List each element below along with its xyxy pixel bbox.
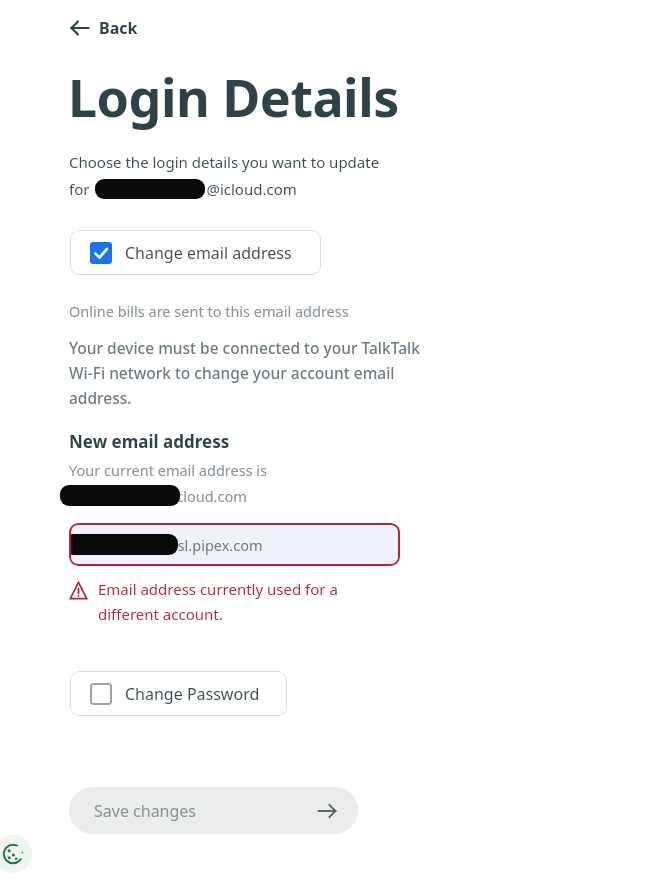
button[interactable]: Cookie settings (0, 835, 32, 873)
staticText: Change Password (125, 683, 260, 705)
staticText: Your device must be connected to your Ta… (69, 337, 420, 408)
staticText: @icloud.com (69, 486, 247, 506)
staticText: Change email address (125, 242, 292, 264)
staticText: for @icloud.com (69, 179, 297, 199)
staticText: Choose the login details you want to upd… (69, 152, 380, 172)
staticText: Save changes (94, 800, 197, 822)
button[interactable]: Save changes (69, 787, 358, 834)
staticText: Your current email address is (69, 460, 268, 480)
button[interactable]: Change Password (70, 671, 287, 716)
staticText: Email address currently used for a diffe… (98, 579, 338, 624)
staticText: @dsl.pipex.com (69, 535, 263, 555)
staticText: New email address (69, 430, 230, 453)
button[interactable]: @dsl.pipex.com (69, 523, 400, 566)
staticText: Online bills are sent to this email addr… (69, 301, 349, 321)
button[interactable]: Change email address (70, 230, 321, 275)
staticText: Back (99, 17, 138, 39)
button[interactable]: Back (62, 13, 148, 43)
staticText: Login Details (68, 61, 399, 132)
